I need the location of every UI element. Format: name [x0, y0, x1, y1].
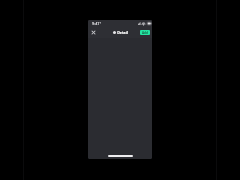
button[interactable]: Close [90, 29, 97, 36]
button[interactable]: Add [140, 30, 150, 35]
staticText: 9:41 [92, 21, 100, 26]
staticText: Add [142, 31, 148, 35]
staticText: Detail [117, 30, 128, 35]
